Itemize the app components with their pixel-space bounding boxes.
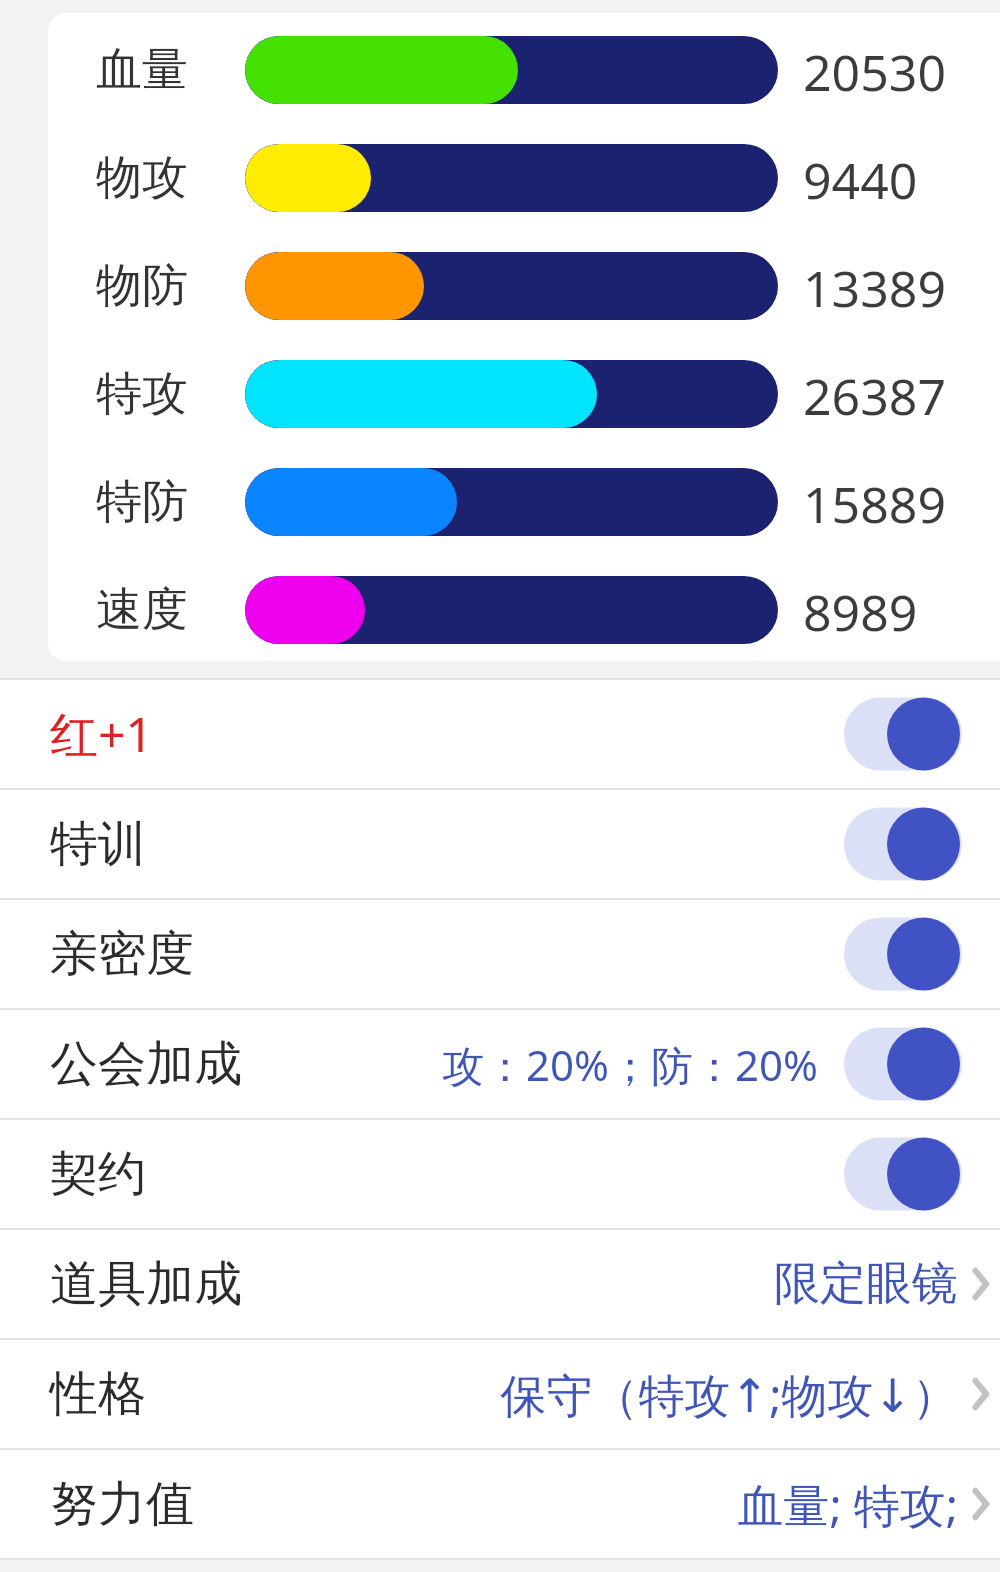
staticText: 9440: [803, 146, 918, 210]
staticText: 性格: [50, 1364, 146, 1424]
other: More: [970, 1340, 1000, 1448]
staticText: 限定眼镜: [774, 1255, 958, 1313]
button[interactable]: 契约: [0, 1120, 1000, 1228]
other: More: [970, 1450, 1000, 1558]
button[interactable]: 道具加成: [0, 1230, 1000, 1338]
button[interactable]: 努力值: [0, 1450, 1000, 1558]
button[interactable]: Toggle: [844, 806, 962, 882]
staticText: 15889: [803, 470, 946, 534]
staticText: 血量; 特攻;: [737, 1473, 958, 1536]
staticText: 特攻: [96, 365, 188, 423]
button[interactable]: Toggle: [844, 1136, 962, 1212]
staticText: 20530: [803, 38, 946, 102]
staticText: 物防: [96, 257, 188, 315]
button[interactable]: 公会加成: [0, 1010, 1000, 1118]
staticText: 特训: [50, 814, 146, 874]
staticText: 血量: [96, 41, 188, 99]
staticText: 8989: [803, 578, 918, 642]
staticText: 公会加成: [50, 1034, 242, 1094]
staticText: 亲密度: [50, 924, 194, 984]
staticText: 攻：20%；防：20%: [442, 1036, 818, 1093]
other: More: [970, 1230, 1000, 1338]
staticText: 速度: [96, 581, 188, 639]
staticText: 保守（特攻↑;物攻↓）: [500, 1363, 958, 1426]
button[interactable]: Toggle: [844, 916, 962, 992]
button[interactable]: Toggle: [844, 696, 962, 772]
button[interactable]: 特训: [0, 790, 1000, 898]
button[interactable]: 亲密度: [0, 900, 1000, 1008]
staticText: 契约: [50, 1144, 146, 1204]
button[interactable]: 性格: [0, 1340, 1000, 1448]
button[interactable]: Toggle: [844, 1026, 962, 1102]
staticText: 特防: [96, 473, 188, 531]
staticText: 13389: [803, 254, 946, 318]
staticText: 道具加成: [50, 1254, 242, 1314]
staticText: 红+1: [50, 701, 153, 767]
staticText: 努力值: [50, 1474, 194, 1534]
staticText: 26387: [803, 362, 946, 426]
button[interactable]: 红+1: [0, 680, 1000, 788]
staticText: 物攻: [96, 149, 188, 207]
